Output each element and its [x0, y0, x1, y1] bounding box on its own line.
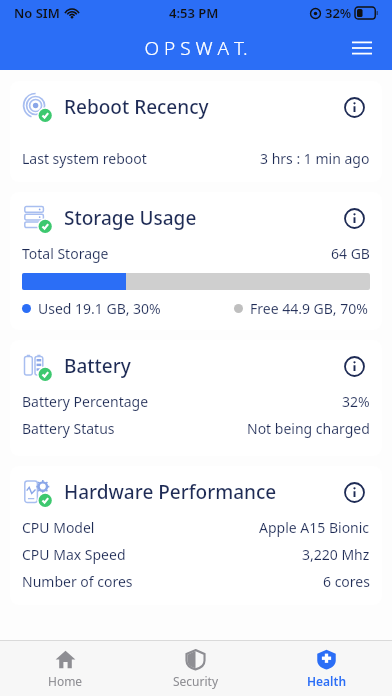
- button[interactable]: Health: [261, 641, 392, 696]
- staticText: No SIM: [14, 4, 60, 22]
- staticText: O P S W A T.: [144, 35, 248, 61]
- staticText: 6 cores: [323, 572, 370, 591]
- staticText: Not being charged: [247, 419, 370, 438]
- staticText: Battery: [64, 353, 131, 379]
- staticText: Storage Usage: [64, 205, 197, 231]
- button[interactable]: Storage Usage: [10, 192, 382, 330]
- staticText: Free 44.9 GB, 70%: [250, 299, 368, 318]
- staticText: Home: [48, 673, 83, 689]
- staticText: Used 19.1 GB, 30%: [38, 299, 161, 318]
- button[interactable]: Hardware Performance: [10, 466, 382, 605]
- staticText: Number of cores: [22, 572, 133, 591]
- button[interactable]: Home: [0, 641, 130, 696]
- staticText: CPU Max Speed: [22, 545, 126, 564]
- staticText: Total Storage: [22, 244, 109, 263]
- staticText: Battery Percentage: [22, 392, 149, 411]
- staticText: 3,220 Mhz: [302, 545, 370, 564]
- button[interactable]: Info about Storage Usage: [338, 202, 370, 234]
- button[interactable]: Battery: [10, 340, 382, 456]
- staticText: Hardware Performance: [64, 479, 277, 505]
- button[interactable]: Reboot Recency: [10, 81, 382, 182]
- staticText: 3 hrs : 1 min ago: [260, 149, 370, 168]
- staticText: CPU Model: [22, 518, 95, 537]
- staticText: Security: [173, 673, 219, 689]
- staticText: Apple A15 Bionic: [259, 518, 370, 537]
- staticText: 64 GB: [331, 244, 370, 263]
- button[interactable]: Info about Reboot Recency: [338, 91, 370, 123]
- staticText: Last system reboot: [22, 149, 147, 168]
- staticText: 32%: [342, 392, 370, 411]
- staticText: Reboot Recency: [64, 94, 209, 120]
- button[interactable]: Info about Hardware Performance: [338, 476, 370, 508]
- staticText: Health: [307, 673, 347, 689]
- staticText: Battery Status: [22, 419, 115, 438]
- button[interactable]: Info about Battery: [338, 350, 370, 382]
- staticText: 4:53 PM: [169, 4, 219, 22]
- staticText: 32%: [325, 4, 352, 22]
- button[interactable]: Menu: [342, 28, 382, 68]
- button[interactable]: Security: [130, 641, 261, 696]
